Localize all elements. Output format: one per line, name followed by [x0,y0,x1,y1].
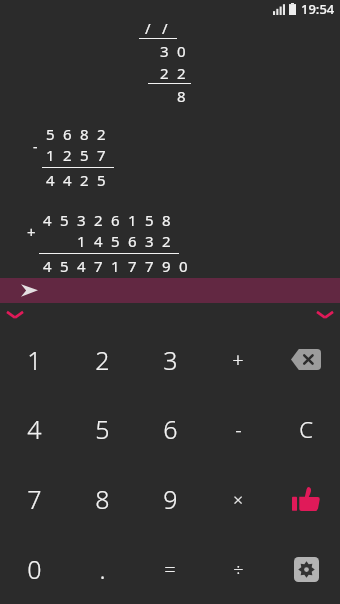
staticText: 8 [162,210,171,230]
staticText: . [99,552,106,586]
button[interactable]: Expand left [5,308,25,321]
staticText: 2 [63,145,72,165]
staticText: 19:54 [301,0,335,18]
button[interactable]: 7 [0,464,68,534]
button[interactable]: 3 [136,325,204,394]
staticText: / [162,18,168,38]
staticText: 5 [145,210,154,230]
staticText: 1 [111,256,120,276]
staticText: 2 [160,63,169,83]
staticText: 6 [111,210,120,230]
staticText: 2 [177,63,186,83]
staticText: 7 [27,482,42,516]
staticText: 7 [94,256,103,276]
button[interactable]: Settings [272,534,340,604]
staticText: 9 [162,256,171,276]
button[interactable]: Backspace [272,325,340,394]
staticText: × [233,488,243,511]
staticText: = [164,556,176,583]
staticText: 8 [80,124,89,144]
staticText: 3 [145,231,154,251]
staticText: 4 [43,256,52,276]
staticText: 2 [97,124,106,144]
staticText: 4 [63,170,72,190]
staticText: 2 [94,210,103,230]
staticText: 5 [60,256,69,276]
staticText: 0 [179,256,188,276]
button[interactable]: . [68,534,136,604]
button[interactable]: = [136,534,204,604]
staticText: ÷ [233,557,244,582]
button[interactable]: - [204,394,272,464]
staticText: 6 [128,231,137,251]
staticText: 5 [60,210,69,230]
button[interactable]: C [272,394,340,464]
staticText: 6 [163,412,178,446]
button[interactable]: Expand right [315,308,335,321]
staticText: 8 [95,482,110,516]
staticText: 3 [77,210,86,230]
staticText: 7 [128,256,137,276]
staticText: 1 [128,210,137,230]
button[interactable]: 4 [0,394,68,464]
button[interactable]: 9 [136,464,204,534]
staticText: 2 [95,343,110,377]
staticText: 5 [111,231,120,251]
staticText: 3 [163,343,178,377]
staticText: 5 [46,124,55,144]
button[interactable]: Confirm [272,464,340,534]
staticText: - [33,137,38,156]
staticText: 5 [80,145,89,165]
staticText: - [235,416,242,443]
button[interactable]: 6 [136,394,204,464]
other: Send [21,283,38,298]
staticText: 2 [162,231,171,251]
staticText: 1 [27,343,42,377]
staticText: + [27,222,36,242]
staticText: 0 [177,41,186,61]
staticText: 4 [27,412,42,446]
staticText: + [232,346,244,373]
staticText: 1 [77,231,86,251]
staticText: 7 [97,145,106,165]
button[interactable]: 0 [0,534,68,604]
staticText: 1 [46,145,55,165]
staticText: 4 [46,170,55,190]
staticText: 3 [160,41,169,61]
staticText: 4 [94,231,103,251]
staticText: / [145,18,151,38]
staticText: 9 [163,482,178,516]
staticText: 8 [177,86,186,106]
button[interactable]: 1 [0,325,68,394]
button[interactable]: ÷ [204,534,272,604]
button[interactable]: 8 [68,464,136,534]
staticText: 6 [63,124,72,144]
button[interactable]: + [204,325,272,394]
staticText: 7 [145,256,154,276]
button[interactable]: Send [0,278,340,303]
button[interactable]: 2 [68,325,136,394]
staticText: C [299,414,313,444]
staticText: 5 [95,412,110,446]
staticText: 0 [27,552,42,586]
staticText: 2 [80,170,89,190]
button[interactable]: 5 [68,394,136,464]
staticText: 5 [97,170,106,190]
staticText: 4 [77,256,86,276]
staticText: 4 [43,210,52,230]
button[interactable]: × [204,464,272,534]
